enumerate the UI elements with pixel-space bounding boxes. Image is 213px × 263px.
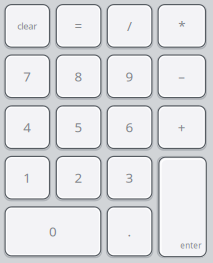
staticText: – <box>178 67 185 85</box>
button[interactable]: enter <box>157 156 206 256</box>
staticText: 8 <box>75 67 83 85</box>
button[interactable]: 1 <box>4 156 50 200</box>
button[interactable]: 5 <box>56 105 101 149</box>
staticText: . <box>128 222 132 240</box>
staticText: * <box>178 17 185 35</box>
button[interactable]: 2 <box>56 156 101 200</box>
staticText: enter <box>180 240 201 251</box>
staticText: 9 <box>126 67 134 85</box>
button[interactable]: clear <box>4 4 50 48</box>
staticText: 2 <box>75 169 83 186</box>
staticText: / <box>127 17 132 35</box>
staticText: clear <box>17 20 37 32</box>
button[interactable]: Multiply <box>157 4 206 48</box>
staticText: + <box>178 118 186 136</box>
button[interactable]: 4 <box>4 105 50 149</box>
button[interactable]: Plus <box>157 105 206 149</box>
button[interactable]: Decimal point <box>107 206 152 256</box>
staticText: 0 <box>49 222 57 240</box>
button[interactable]: 0 <box>4 206 101 256</box>
staticText: 5 <box>75 118 83 136</box>
button[interactable]: 3 <box>107 156 152 200</box>
button[interactable]: 7 <box>4 54 50 98</box>
staticText: 6 <box>126 118 134 136</box>
staticText: 4 <box>23 118 31 136</box>
staticText: 3 <box>126 169 134 186</box>
button[interactable]: 6 <box>107 105 152 149</box>
staticText: 1 <box>23 169 31 186</box>
button[interactable]: Minus <box>157 54 206 98</box>
staticText: 7 <box>23 67 31 85</box>
button[interactable]: 9 <box>107 54 152 98</box>
staticText: = <box>75 17 83 35</box>
button[interactable]: 8 <box>56 54 101 98</box>
button[interactable]: Equals <box>56 4 101 48</box>
button[interactable]: Divide <box>107 4 152 48</box>
